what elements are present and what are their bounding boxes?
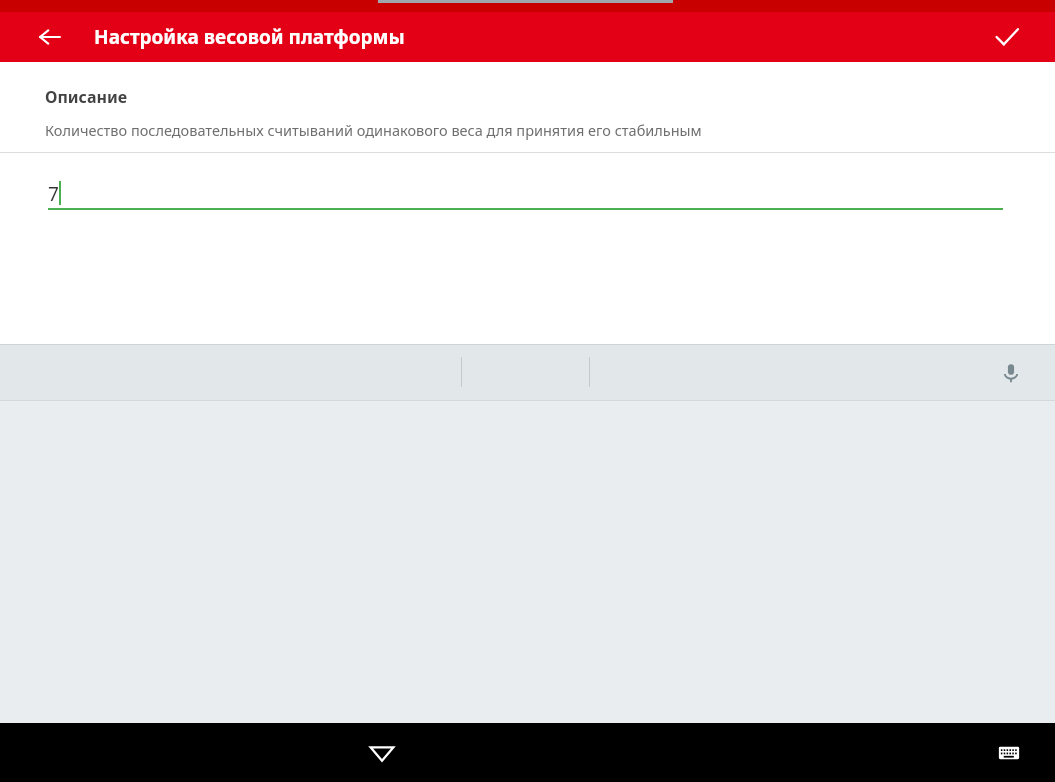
button[interactable]: t: [383, 735, 475, 782]
button[interactable]: Voice input: [988, 350, 1034, 396]
staticText: Настройка весовой платформы: [94, 24, 405, 50]
staticText: Количество последовательных считываний о…: [45, 120, 702, 140]
button[interactable]: Hide keyboard: [352, 723, 412, 782]
staticText: 7: [48, 181, 59, 207]
button[interactable]: Back: [30, 17, 70, 57]
button[interactable]: r: [290, 735, 382, 782]
button[interactable]: Switch keyboard: [985, 729, 1033, 777]
button[interactable]: Save: [985, 15, 1029, 59]
button[interactable]: Backspace: [953, 744, 1023, 782]
button[interactable]: 7: [0, 153, 1055, 217]
staticText: Описание: [45, 86, 128, 108]
